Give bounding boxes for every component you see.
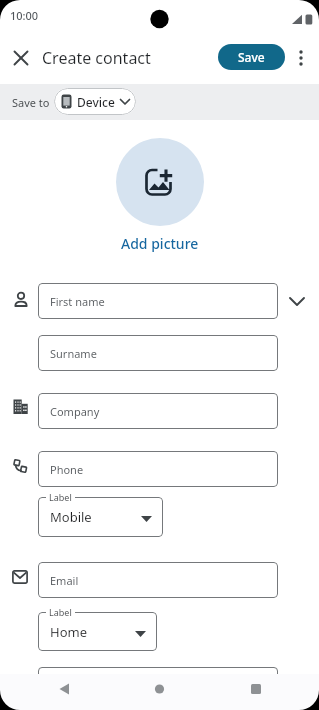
button[interactable] <box>236 671 276 707</box>
staticText: Email <box>50 573 79 588</box>
staticText: Device <box>77 94 115 110</box>
staticText: Label <box>49 491 72 503</box>
button[interactable] <box>291 45 311 71</box>
button[interactable]: Company <box>38 393 278 429</box>
button[interactable] <box>116 138 204 226</box>
button[interactable]: Add picture <box>0 234 319 253</box>
button[interactable] <box>44 671 84 707</box>
button[interactable] <box>140 671 180 707</box>
staticText: Create contact <box>42 47 151 69</box>
button[interactable]: Phone <box>38 451 278 487</box>
button[interactable]: Email <box>38 562 278 598</box>
staticText: 10:00 <box>10 8 39 23</box>
staticText: Add picture <box>121 234 199 253</box>
staticText: Label <box>49 606 72 618</box>
button[interactable]: Save <box>218 44 285 70</box>
button[interactable] <box>283 287 311 315</box>
staticText: First name <box>50 294 105 309</box>
staticText: Company <box>50 404 100 419</box>
staticText: Home <box>50 623 87 641</box>
staticText: Surname <box>50 346 97 361</box>
staticText: Save to <box>12 95 50 110</box>
button[interactable]: First name <box>38 283 278 319</box>
staticText: Save <box>238 49 265 65</box>
staticText: Mobile <box>50 508 92 526</box>
button[interactable]: Surname <box>38 335 278 371</box>
button[interactable]: Mobile <box>38 497 163 537</box>
staticText: Phone <box>50 462 84 477</box>
button[interactable] <box>8 45 34 71</box>
button[interactable]: Home <box>38 612 157 651</box>
button[interactable]: Device <box>54 88 136 115</box>
